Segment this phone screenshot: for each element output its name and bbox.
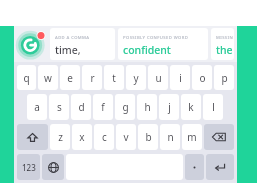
staticText: confident: [123, 43, 171, 57]
staticText: t: [112, 71, 116, 85]
button[interactable]: e: [60, 65, 80, 90]
button[interactable]: POSSIBLY CONFUSED WORD: [118, 28, 208, 60]
button[interactable]: [185, 154, 204, 180]
staticText: the te: [216, 43, 234, 57]
button[interactable]: k: [181, 94, 201, 120]
staticText: o: [199, 71, 206, 85]
staticText: i: [179, 71, 182, 85]
button[interactable]: s: [49, 94, 69, 120]
staticText: ADD A COMMA: [55, 35, 90, 41]
button[interactable]: ADD A COMMA: [50, 28, 115, 60]
button[interactable]: Shift: [17, 124, 48, 150]
button[interactable]: o: [192, 65, 212, 90]
staticText: h: [144, 100, 151, 114]
button[interactable]: a: [27, 94, 47, 120]
button[interactable]: g: [115, 94, 135, 120]
button[interactable]: t: [104, 65, 124, 90]
button[interactable]: z: [50, 124, 70, 150]
staticText: 123: [22, 162, 36, 173]
button[interactable]: MISSING: [211, 28, 234, 60]
button[interactable]: Change language: [42, 154, 64, 180]
staticText: v: [123, 130, 129, 144]
button[interactable]: Backspace: [204, 124, 234, 150]
staticText: u: [155, 71, 162, 85]
staticText: g: [122, 100, 129, 114]
staticText: d: [78, 100, 85, 114]
button[interactable]: m: [182, 124, 202, 150]
button[interactable]: l: [203, 94, 223, 120]
button[interactable]: b: [138, 124, 158, 150]
button[interactable]: x: [72, 124, 92, 150]
staticText: w: [44, 71, 52, 85]
staticText: time,: [55, 43, 81, 57]
button[interactable]: r: [82, 65, 102, 90]
button[interactable]: Enter: [206, 154, 234, 180]
button[interactable]: j: [159, 94, 179, 120]
staticText: y: [133, 71, 139, 85]
staticText: s: [57, 100, 62, 114]
staticText: f: [101, 100, 105, 114]
staticText: n: [167, 130, 174, 144]
button[interactable]: v: [116, 124, 136, 150]
button[interactable]: n: [160, 124, 180, 150]
staticText: z: [58, 130, 63, 144]
staticText: MISSING: [216, 35, 234, 41]
staticText: k: [188, 100, 194, 114]
staticText: e: [67, 71, 73, 85]
button[interactable]: c: [94, 124, 114, 150]
staticText: r: [90, 71, 95, 85]
staticText: c: [102, 130, 107, 144]
button[interactable]: u: [148, 65, 168, 90]
button[interactable]: 123: [17, 154, 40, 180]
button[interactable]: w: [38, 65, 58, 90]
button[interactable]: d: [71, 94, 91, 120]
staticText: l: [212, 100, 215, 114]
staticText: p: [221, 71, 228, 85]
staticText: x: [79, 130, 85, 144]
staticText: POSSIBLY CONFUSED WORD: [123, 35, 189, 41]
staticText: q: [23, 71, 30, 85]
button[interactable]: y: [126, 65, 146, 90]
button[interactable]: f: [93, 94, 113, 120]
button[interactable]: i: [170, 65, 190, 90]
staticText: m: [187, 130, 197, 144]
staticText: b: [145, 130, 152, 144]
button[interactable]: h: [137, 94, 157, 120]
staticText: a: [34, 100, 40, 114]
button[interactable]: Grammarly: [17, 29, 47, 59]
button[interactable]: q: [17, 65, 36, 90]
button[interactable]: p: [214, 65, 234, 90]
staticText: j: [168, 100, 171, 114]
